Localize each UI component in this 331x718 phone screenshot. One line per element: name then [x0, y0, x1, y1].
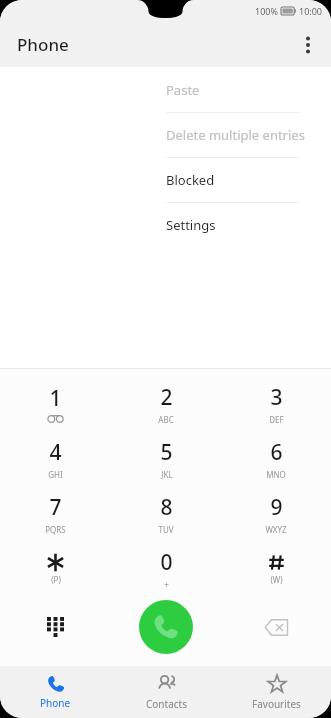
- staticText: Settings: [166, 216, 216, 234]
- staticText: Phone: [40, 696, 71, 710]
- button[interactable]: (W): [221, 541, 331, 596]
- staticText: 6: [270, 438, 283, 467]
- button[interactable]: Settings: [150, 203, 316, 247]
- button[interactable]: 7: [0, 486, 111, 541]
- button[interactable]: 6: [221, 431, 331, 486]
- staticText: PQRS: [45, 524, 66, 535]
- staticText: Paste: [166, 81, 200, 99]
- staticText: 9: [270, 493, 283, 522]
- button[interactable]: Call: [139, 600, 193, 654]
- button[interactable]: Blocked: [150, 158, 316, 202]
- button[interactable]: 0: [111, 541, 221, 596]
- staticText: Contacts: [146, 697, 187, 711]
- staticText: 4: [49, 438, 62, 467]
- staticText: DEF: [269, 414, 284, 425]
- staticText: 100%: [255, 5, 278, 17]
- staticText: 7: [49, 493, 62, 522]
- button[interactable]: More options: [291, 28, 325, 62]
- button[interactable]: Backspace: [221, 596, 331, 658]
- staticText: 5: [160, 438, 173, 467]
- button[interactable]: Paste: [150, 68, 316, 112]
- staticText: (P): [51, 574, 61, 585]
- button[interactable]: 3: [221, 376, 331, 431]
- staticText: MNO: [266, 469, 286, 480]
- staticText: Delete multiple entries: [166, 126, 305, 144]
- staticText: 2: [160, 383, 173, 412]
- button[interactable]: Favourites: [221, 666, 331, 718]
- button[interactable]: Delete multiple entries: [150, 113, 316, 157]
- button[interactable]: Show keypad: [0, 596, 111, 658]
- staticText: 1: [49, 384, 62, 413]
- staticText: +: [164, 579, 169, 590]
- staticText: ABC: [158, 414, 174, 425]
- button[interactable]: 1: [0, 376, 111, 431]
- staticText: Favourites: [252, 697, 301, 711]
- button[interactable]: 2: [111, 376, 221, 431]
- button[interactable]: 5: [111, 431, 221, 486]
- button[interactable]: (P): [0, 541, 111, 596]
- staticText: (W): [270, 574, 283, 585]
- staticText: Phone: [17, 33, 69, 56]
- staticText: 3: [270, 383, 283, 412]
- button[interactable]: 9: [221, 486, 331, 541]
- staticText: 0: [160, 548, 173, 577]
- button[interactable]: Phone: [0, 666, 111, 718]
- button[interactable]: 4: [0, 431, 111, 486]
- button[interactable]: 8: [111, 486, 221, 541]
- staticText: JKL: [161, 469, 173, 480]
- button[interactable]: Contacts: [111, 666, 221, 718]
- staticText: Blocked: [166, 171, 215, 189]
- staticText: GHI: [48, 469, 63, 480]
- staticText: 10:00: [299, 5, 323, 17]
- staticText: TUV: [158, 524, 174, 535]
- staticText: WXYZ: [265, 524, 287, 535]
- staticText: 8: [160, 493, 173, 522]
